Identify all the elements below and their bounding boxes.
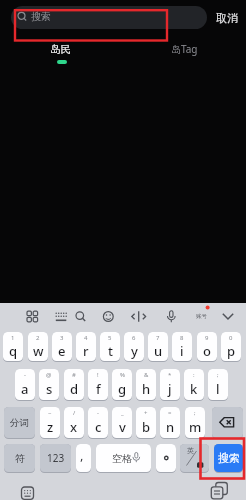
button[interactable]: & [136, 369, 156, 401]
button[interactable]: 0 [221, 332, 241, 362]
staticText: w [33, 342, 44, 360]
button[interactable]: - [15, 369, 35, 401]
staticText: 搜索 [31, 10, 51, 23]
button[interactable]: = [160, 407, 180, 439]
staticText: f [96, 380, 101, 398]
button[interactable] [95, 304, 121, 330]
staticText: a [21, 380, 29, 398]
staticText: 123 [47, 451, 65, 465]
staticText: 4 [84, 334, 88, 342]
staticText: p [227, 342, 236, 360]
button[interactable] [156, 444, 176, 473]
button[interactable]: , [76, 444, 91, 473]
button[interactable] [215, 304, 241, 330]
staticText: = [168, 409, 172, 417]
staticText: ; [194, 409, 196, 417]
staticText: 8 [180, 334, 184, 342]
staticText: 账号 [196, 313, 207, 320]
staticText: - [97, 409, 99, 417]
button[interactable] [188, 304, 214, 330]
button[interactable]: ; [185, 407, 205, 439]
staticText: h [142, 380, 151, 398]
staticText: 岛Tag [171, 42, 198, 56]
button[interactable]: ; [208, 369, 228, 401]
button[interactable]: 分词 [4, 407, 35, 439]
button[interactable]: - [88, 407, 108, 439]
button[interactable]: ! [88, 369, 108, 401]
button[interactable]: 7 [148, 332, 168, 362]
staticText: b [142, 418, 151, 436]
staticText: # [72, 371, 76, 379]
button[interactable]: 取消 [208, 6, 246, 29]
staticText: n [166, 418, 175, 436]
button[interactable]: 4 [76, 332, 96, 362]
button[interactable]: / [64, 407, 84, 439]
button[interactable]: : [184, 369, 204, 401]
staticText: z [47, 418, 54, 436]
staticText: j [168, 380, 172, 398]
button[interactable]: + [136, 407, 156, 439]
staticText: g [118, 380, 127, 398]
button[interactable]: 3 [52, 332, 72, 362]
button[interactable]: 空格 [96, 444, 151, 473]
button[interactable]: 123 [40, 444, 71, 473]
staticText: 5 [108, 334, 112, 342]
staticText: + [144, 409, 148, 417]
button[interactable]: * [160, 369, 180, 401]
staticText: 空格 [112, 452, 132, 465]
button[interactable]: @ [39, 369, 59, 401]
staticText: 英 [187, 446, 194, 455]
button[interactable] [126, 304, 152, 330]
button[interactable] [212, 407, 243, 439]
button[interactable] [68, 304, 94, 330]
button[interactable]: 岛民 [30, 41, 91, 57]
staticText: _ [121, 409, 124, 417]
button[interactable]: 符 [4, 444, 35, 473]
button[interactable] [158, 304, 184, 330]
button[interactable] [48, 304, 74, 330]
staticText: - [24, 371, 26, 379]
staticText: : [193, 371, 195, 379]
button[interactable]: 岛Tag [154, 41, 215, 57]
staticText: 2 [36, 334, 40, 342]
staticText: ~ [48, 409, 52, 417]
staticText: 1 [11, 334, 15, 342]
staticText: 搜索 [218, 451, 240, 465]
staticText: e [58, 342, 66, 360]
staticText: u [154, 342, 163, 360]
staticText: 分词 [10, 417, 29, 429]
button[interactable]: 搜索 [214, 444, 243, 473]
button[interactable]: 5 [100, 332, 120, 362]
staticText: , [80, 446, 84, 464]
staticText: 符 [15, 452, 25, 465]
button[interactable]: 9 [197, 332, 217, 362]
staticText: 岛民 [50, 43, 71, 56]
staticText: 取消 [216, 11, 238, 25]
button[interactable]: % [112, 369, 132, 401]
staticText: ! [97, 371, 99, 379]
staticText: d [70, 380, 79, 398]
button[interactable]: 6 [124, 332, 144, 362]
button[interactable]: _ [112, 407, 132, 439]
staticText: x [70, 418, 78, 436]
button[interactable] [11, 6, 207, 29]
button[interactable]: ~ [40, 407, 60, 439]
staticText: 3 [60, 334, 64, 342]
staticText: s [46, 380, 53, 398]
staticText: @ [46, 371, 52, 379]
staticText: * [168, 371, 172, 379]
staticText: v [119, 418, 126, 436]
button[interactable]: 2 [28, 332, 48, 362]
button[interactable]: 1 [3, 332, 23, 362]
button[interactable] [19, 304, 45, 330]
staticText: & [144, 371, 149, 379]
button[interactable]: # [64, 369, 84, 401]
button[interactable]: 8 [172, 332, 192, 362]
staticText: i [180, 342, 184, 360]
staticText: k [190, 380, 198, 398]
staticText: % [120, 371, 125, 379]
button[interactable] [17, 483, 37, 500]
button[interactable]: 英 [180, 444, 209, 473]
staticText: 9 [205, 334, 209, 342]
button[interactable] [207, 480, 231, 500]
